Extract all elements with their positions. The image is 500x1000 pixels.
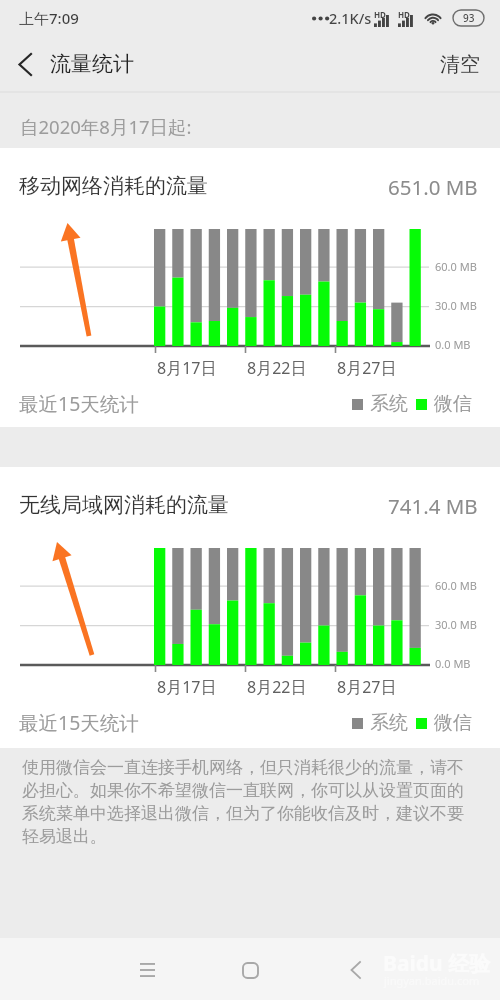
staticText: 8月22日 xyxy=(247,676,307,698)
staticText: 系统 xyxy=(370,392,408,416)
staticText: 651.0 MB xyxy=(388,173,478,201)
staticText: 微信 xyxy=(434,392,472,416)
button[interactable]: 清空 xyxy=(420,40,500,89)
staticText: 流量统计 xyxy=(50,51,134,77)
button[interactable]: Back xyxy=(331,946,379,994)
button[interactable]: Home xyxy=(226,946,274,994)
staticText: 微信 xyxy=(434,711,472,735)
button[interactable]: Menu xyxy=(123,946,171,994)
staticText: HD xyxy=(398,9,410,20)
staticText: 60.0 MB xyxy=(435,259,477,274)
staticText: 0.0 MB xyxy=(435,656,471,671)
staticText: 系统 xyxy=(370,711,408,735)
staticText: 清空 xyxy=(440,52,480,77)
staticText: 8月27日 xyxy=(337,676,397,698)
staticText: 最近15天统计 xyxy=(19,390,139,417)
staticText: 8月22日 xyxy=(247,357,307,379)
staticText: 741.4 MB xyxy=(388,492,478,520)
button[interactable]: Back xyxy=(8,47,42,81)
staticText: 8月17日 xyxy=(157,676,217,698)
staticText: 30.0 MB xyxy=(435,298,477,313)
staticText: 无线局域网消耗的流量 xyxy=(19,492,229,518)
staticText: 上午7:09 xyxy=(19,8,79,28)
staticText: 移动网络消耗的流量 xyxy=(19,173,208,199)
staticText: 2.1K/s xyxy=(329,8,372,28)
staticText: HD xyxy=(374,9,386,20)
staticText: 60.0 MB xyxy=(435,578,477,593)
staticText: 30.0 MB xyxy=(435,617,477,632)
staticText: 自2020年8月17日起: xyxy=(20,114,192,139)
staticText: 8月17日 xyxy=(157,357,217,379)
staticText: 93 xyxy=(463,11,475,25)
staticText: 使用微信会一直连接手机网络，但只消耗很少的流量，请不必担心。如果你不希望微信一直… xyxy=(22,757,477,847)
staticText: 0.0 MB xyxy=(435,337,471,352)
staticText: 8月27日 xyxy=(337,357,397,379)
staticText: 最近15天统计 xyxy=(19,709,139,736)
